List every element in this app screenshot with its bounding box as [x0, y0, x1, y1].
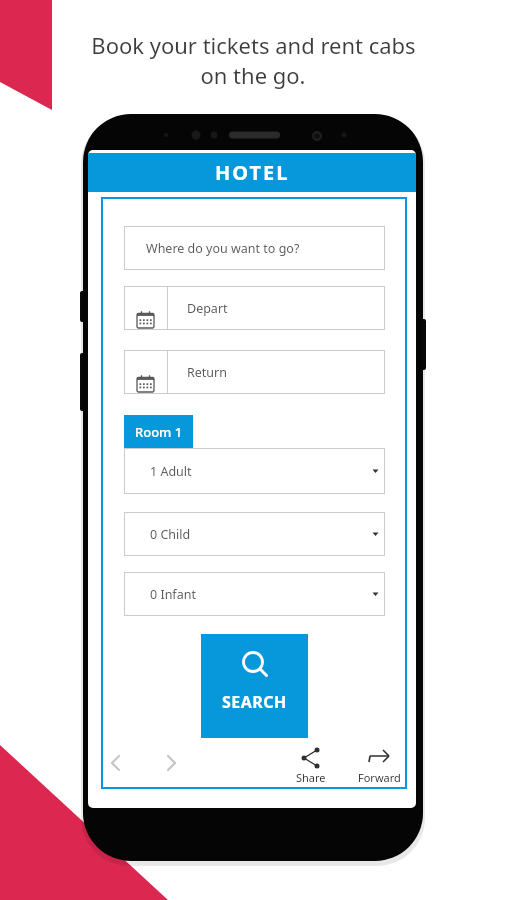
staticText: 0 Infant — [150, 586, 196, 603]
button[interactable] — [103, 748, 129, 778]
staticText: on the go. — [200, 60, 306, 90]
button[interactable]: Return — [124, 350, 385, 394]
staticText: HOTEL — [215, 159, 290, 186]
staticText: Depart — [187, 300, 228, 317]
button[interactable]: Room 1 — [124, 415, 193, 448]
staticText: Room 1 — [135, 423, 183, 441]
button[interactable]: 0 Child — [124, 512, 385, 556]
button[interactable]: Forward — [353, 743, 405, 785]
staticText: Share — [296, 770, 326, 785]
button[interactable]: 1 Adult — [124, 448, 385, 494]
staticText: Return — [187, 364, 227, 381]
staticText: Forward — [358, 770, 401, 785]
staticText: SEARCH — [222, 691, 287, 713]
staticText: 1 Adult — [150, 463, 192, 480]
button[interactable]: 0 Infant — [124, 572, 385, 616]
button[interactable] — [158, 748, 184, 778]
staticText: Book your tickets and rent cabs — [91, 30, 416, 60]
staticText: 0 Child — [150, 526, 191, 543]
staticText: Where do you want to go? — [146, 240, 300, 257]
button[interactable]: Depart — [124, 286, 385, 330]
button[interactable]: Share — [288, 743, 334, 785]
button[interactable]: Where do you want to go? — [124, 226, 385, 270]
button[interactable]: SEARCH — [201, 634, 308, 738]
